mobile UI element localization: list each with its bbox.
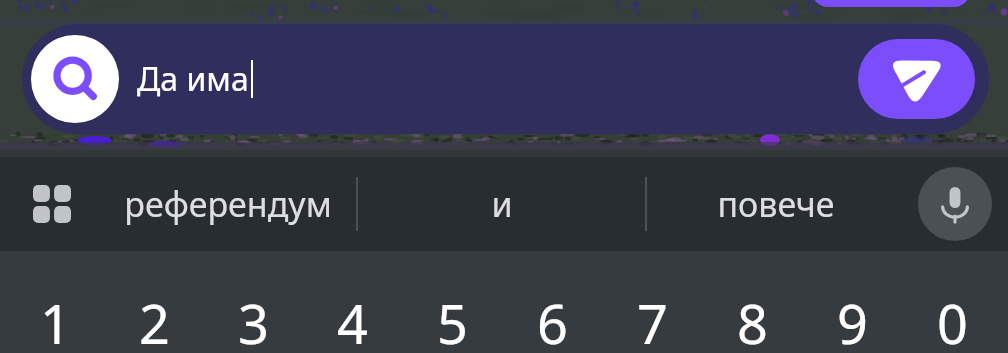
staticText: референдум [124,181,332,227]
button[interactable]: повече [647,157,905,251]
button[interactable]: 5 [402,251,502,353]
button[interactable]: 9 [802,251,902,353]
button[interactable]: 2 [105,251,204,353]
staticText: 3 [238,286,269,353]
button[interactable]: Send [858,39,975,119]
staticText: и [491,181,513,227]
button[interactable]: Search [31,35,119,123]
staticText: Да има [137,57,249,101]
button[interactable]: 8 [702,251,802,353]
staticText: 8 [737,286,768,353]
staticText: 4 [337,286,368,353]
button[interactable]: 0 [902,251,1002,353]
button[interactable]: 1 [6,251,105,353]
staticText: 6 [537,286,568,353]
button[interactable]: и [358,157,645,251]
staticText: повече [717,181,835,227]
staticText: 9 [837,286,868,353]
staticText: 5 [437,286,468,353]
button[interactable]: 7 [602,251,702,353]
button[interactable]: Keyboard options [18,170,86,238]
staticText: 0 [937,286,968,353]
button[interactable]: 4 [303,251,402,353]
staticText: 7 [637,286,668,353]
staticText: 1 [40,286,71,353]
button[interactable]: 6 [502,251,602,353]
staticText: 2 [139,286,170,353]
button[interactable]: 3 [204,251,303,353]
button[interactable]: Voice input [918,167,992,241]
button[interactable]: референдум [99,157,356,251]
